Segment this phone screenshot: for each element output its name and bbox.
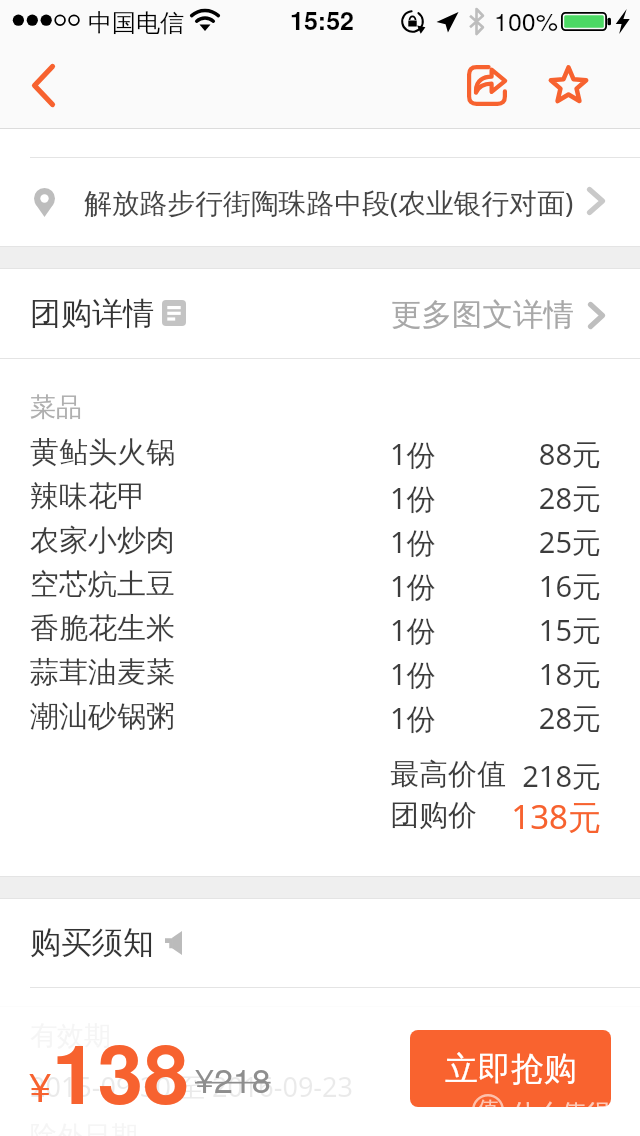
- staticText: 除外日期: [30, 1119, 138, 1136]
- staticText: 16元: [0, 566, 601, 606]
- staticText: 解放路步行街陶珠路中段(农业银行对面): [84, 183, 574, 221]
- staticText: 2015-09-30 至 2016-09-23: [30, 1068, 353, 1105]
- staticText: 1份: [390, 478, 436, 518]
- button[interactable]: Favorite: [528, 43, 608, 128]
- staticText: 蒜茸油麦菜: [30, 654, 175, 691]
- button[interactable]: 解放路步行街陶珠路中段(农业银行对面): [0, 157, 640, 246]
- staticText: 农家小炒肉: [30, 522, 175, 559]
- staticText: 最高价值: [390, 756, 506, 793]
- staticText: 辣味花甲: [30, 478, 146, 515]
- staticText: 值: [477, 1096, 499, 1124]
- staticText: 138: [52, 1012, 189, 1129]
- staticText: 1份: [390, 654, 436, 694]
- staticText: 团购价: [390, 797, 477, 834]
- staticText: 15元: [0, 610, 601, 650]
- staticText: 团购详情: [30, 294, 154, 333]
- staticText: 中国电信: [88, 8, 184, 38]
- staticText: 1份: [390, 610, 436, 650]
- staticText: 88元: [0, 434, 601, 474]
- staticText: 100%: [494, 2, 558, 38]
- button[interactable]: Back: [3, 43, 83, 128]
- staticText: 25元: [0, 522, 601, 562]
- staticText: 黄鲇头火锅: [30, 434, 175, 471]
- staticText: 138元: [0, 794, 601, 839]
- staticText: 香脆花生米: [30, 610, 175, 647]
- staticText: 潮汕砂锅粥: [30, 698, 175, 735]
- staticText: ¥218: [195, 1054, 271, 1103]
- staticText: 购买须知: [30, 923, 154, 962]
- staticText: 什么值得买: [511, 1098, 636, 1129]
- staticText: 立即抢购: [445, 1048, 577, 1090]
- staticText: 菜品: [30, 391, 82, 424]
- staticText: 1份: [390, 522, 436, 562]
- staticText: 更多图文详情: [391, 296, 574, 334]
- staticText: 1份: [390, 698, 436, 738]
- staticText: 28元: [0, 698, 601, 738]
- staticText: 218元: [0, 756, 601, 796]
- staticText: 空芯炕土豆: [30, 566, 175, 603]
- staticText: 15:52: [290, 2, 354, 38]
- staticText: 1份: [390, 434, 436, 474]
- staticText: ¥: [29, 1056, 52, 1113]
- staticText: 28元: [0, 478, 601, 518]
- staticText: 18元: [0, 654, 601, 694]
- staticText: 有效期: [30, 1019, 111, 1053]
- button[interactable]: 立即抢购: [410, 1030, 611, 1107]
- button[interactable]: 更多图文详情: [391, 296, 605, 334]
- staticText: 1份: [390, 566, 436, 606]
- button[interactable]: Share: [447, 43, 527, 128]
